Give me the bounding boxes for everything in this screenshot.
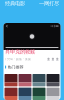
button[interactable]: Movie (4, 88, 17, 100)
staticText: 一网打尽 (39, 0, 59, 7)
staticText: 1994 · 剧情 · 美国 (5, 57, 31, 61)
button[interactable]: Movie (46, 88, 59, 100)
button[interactable]: Movie (46, 74, 59, 86)
button[interactable]: Movie (18, 74, 31, 86)
staticText: 经典电影 (5, 0, 25, 7)
button[interactable]: Movie (4, 74, 17, 86)
button[interactable]: Movie (18, 88, 31, 100)
button[interactable]: Share (56, 58, 59, 61)
button[interactable]: Movie (32, 88, 45, 100)
button[interactable]: Like (47, 58, 50, 61)
button[interactable]: Favourite (51, 58, 55, 61)
staticText: 热门推荐 (8, 65, 24, 69)
button[interactable]: Play (29, 33, 35, 39)
button[interactable]: Back (5, 25, 8, 28)
button[interactable]: Movie (32, 74, 45, 86)
staticText: 肖申克的救赎 (5, 48, 35, 55)
